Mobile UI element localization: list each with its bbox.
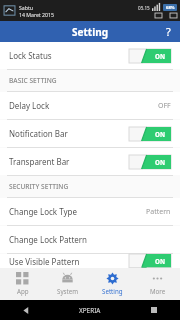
button[interactable]: Notification Bar (0, 120, 180, 147)
staticText: 68% (166, 5, 175, 11)
button[interactable]: Delay Lock (0, 92, 180, 119)
staticText: XPERIA (79, 306, 101, 315)
staticText: Transparent Bar (9, 156, 70, 167)
staticText: Sabtu (19, 4, 34, 11)
button[interactable]: System (45, 268, 90, 300)
staticText: ? (166, 24, 171, 39)
button[interactable]: Toggle on (129, 49, 171, 63)
staticText: Delay Lock (9, 100, 50, 111)
button[interactable]: Toggle on (129, 155, 171, 169)
button[interactable]: Help (156, 21, 180, 42)
staticText: Lock Status (9, 50, 52, 61)
staticText: BASIC SETTING (9, 76, 57, 85)
staticText: Setting (72, 25, 108, 39)
staticText: ON (155, 158, 165, 166)
staticText: ON (155, 130, 165, 138)
button[interactable]: Lock Status (0, 42, 180, 69)
staticText: Change Lock Type (9, 206, 77, 217)
button[interactable]: App (0, 268, 45, 300)
button[interactable]: Change Lock Pattern (0, 226, 180, 253)
button[interactable]: Use Visible Pattern (0, 254, 180, 268)
button[interactable]: Change Lock Type (0, 198, 180, 225)
staticText: Setting (102, 287, 123, 295)
button[interactable]: Back (0, 300, 53, 320)
button[interactable]: Transparent Bar (0, 148, 180, 175)
button[interactable]: Toggle on (129, 127, 171, 141)
staticText: Pattern (146, 207, 171, 217)
button[interactable]: More (135, 268, 180, 300)
staticText: Notification Bar (9, 128, 68, 139)
staticText: 14 Maret 2015 (19, 11, 54, 18)
staticText: App (17, 287, 29, 295)
staticText: OFF (158, 101, 171, 111)
button[interactable]: Toggle on (129, 254, 171, 268)
button[interactable]: Recents (127, 300, 180, 320)
staticText: ON (155, 52, 165, 60)
button[interactable]: Setting (90, 268, 135, 300)
staticText: Use Visible Pattern (9, 256, 80, 267)
staticText: More (150, 287, 166, 295)
staticText: 05.15 (138, 5, 150, 11)
staticText: SECURITY SETTING (9, 182, 69, 191)
staticText: ON (155, 257, 165, 265)
staticText: System (57, 287, 79, 295)
staticText: Change Lock Pattern (9, 234, 88, 245)
